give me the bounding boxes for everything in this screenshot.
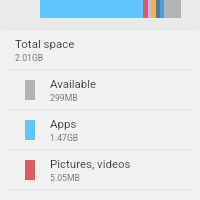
staticText: Pictures, videos xyxy=(50,157,131,170)
staticText: Apps xyxy=(50,117,77,130)
button[interactable]: Apps xyxy=(0,110,200,150)
staticText: Total space xyxy=(15,37,75,50)
staticText: 299MB xyxy=(50,93,78,103)
button[interactable]: Total space xyxy=(0,30,200,70)
staticText: 2.01GB xyxy=(15,53,44,63)
staticText: Available xyxy=(50,77,97,90)
button[interactable]: Available xyxy=(0,70,200,110)
staticText: 5.05MB xyxy=(50,173,80,183)
button[interactable]: Pictures, videos xyxy=(0,150,200,190)
staticText: 1.47GB xyxy=(50,133,79,143)
